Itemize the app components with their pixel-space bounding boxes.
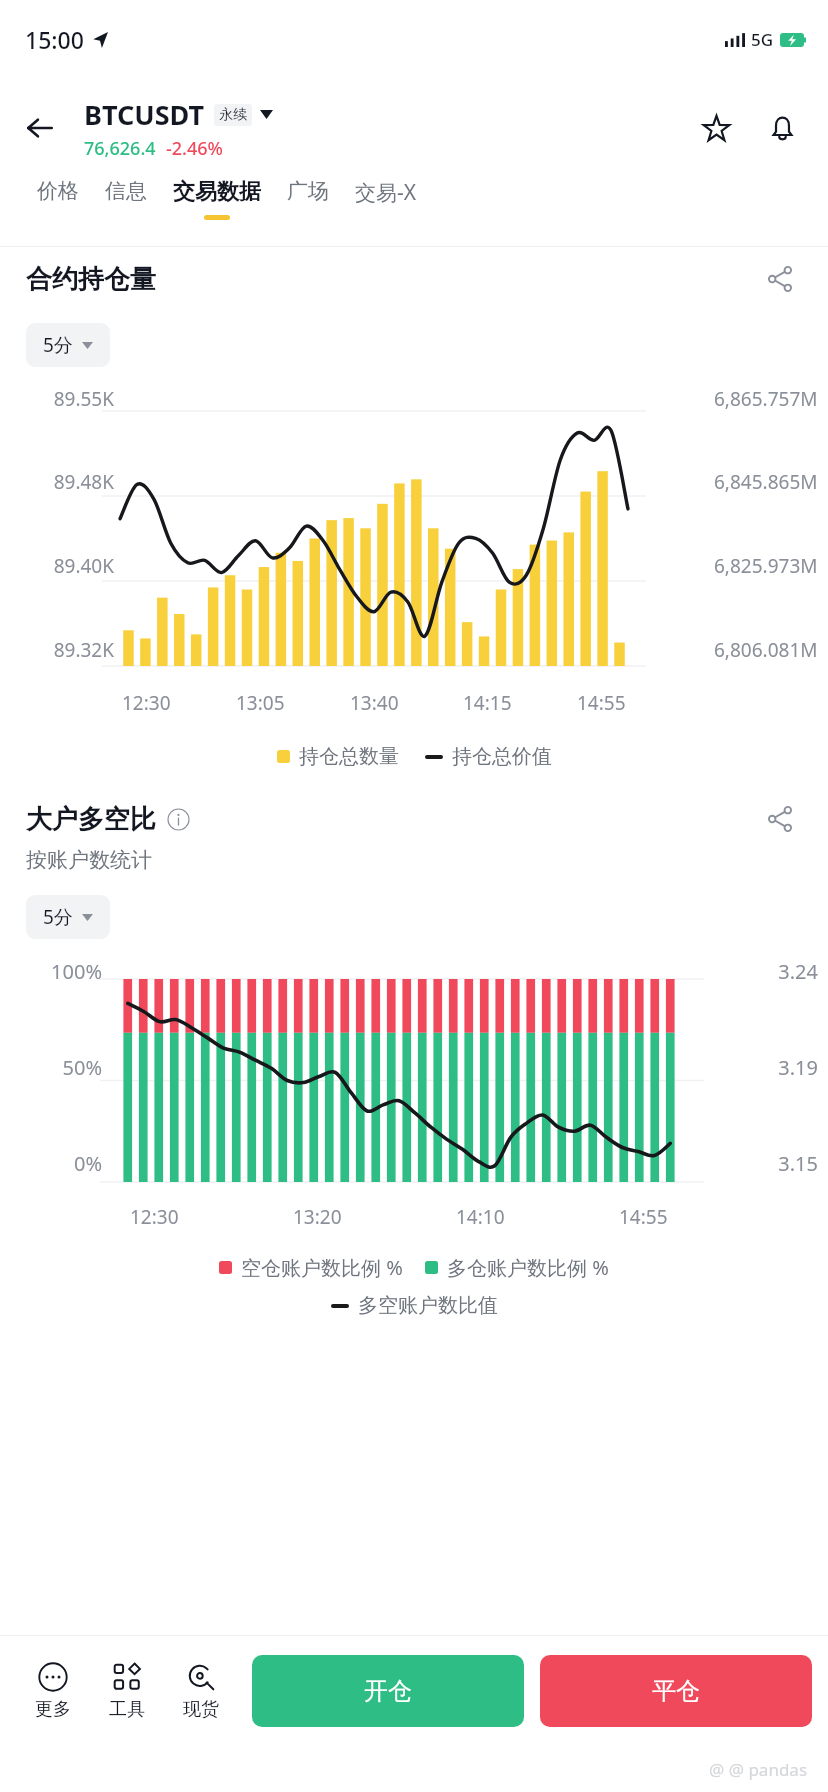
- staticText: 13:05: [236, 690, 285, 716]
- button[interactable]: 价格: [24, 178, 92, 213]
- button[interactable]: Info: [165, 806, 191, 832]
- button[interactable]: 交易数据: [160, 178, 274, 220]
- staticText: 6,806.081M: [714, 637, 818, 663]
- button[interactable]: 现货: [164, 1657, 238, 1725]
- staticText: 3.15: [732, 1150, 818, 1177]
- staticText: 大户多空比: [26, 803, 156, 836]
- button[interactable]: Notifications: [754, 100, 810, 156]
- staticText: 5分: [43, 332, 73, 358]
- staticText: 现货: [183, 1698, 219, 1721]
- staticText: 89.40K: [10, 553, 114, 579]
- staticText: 6,845.865M: [714, 469, 818, 495]
- staticText: 按账户数统计: [26, 847, 152, 873]
- staticText: 14:15: [463, 690, 512, 716]
- staticText: 信息: [105, 178, 147, 204]
- button[interactable]: 交易-X: [342, 178, 430, 216]
- staticText: 13:20: [293, 1204, 342, 1230]
- button[interactable]: Back: [12, 100, 68, 156]
- staticText: 6,865.757M: [714, 386, 818, 412]
- staticText: 平仓: [652, 1676, 700, 1706]
- staticText: 多空账户数比值: [358, 1293, 498, 1318]
- button[interactable]: Favorite: [688, 100, 744, 156]
- staticText: 更多: [35, 1698, 71, 1721]
- staticText: 广场: [287, 178, 329, 204]
- staticText: 合约持仓量: [26, 263, 156, 296]
- button[interactable]: 5分: [26, 895, 110, 939]
- staticText: 14:55: [577, 690, 626, 716]
- staticText: 工具: [109, 1698, 145, 1721]
- staticText: 持仓总价值: [452, 744, 552, 769]
- staticText: 5分: [43, 904, 73, 930]
- button[interactable]: 开仓: [252, 1655, 524, 1727]
- staticText: 6,825.973M: [714, 553, 818, 579]
- staticText: 13:40: [350, 690, 399, 716]
- staticText: BTCUSDT: [84, 96, 205, 133]
- staticText: 0%: [10, 1150, 102, 1177]
- staticText: 15:00: [25, 24, 84, 55]
- staticText: 14:10: [456, 1204, 505, 1230]
- staticText: 12:30: [122, 690, 171, 716]
- staticText: 空仓账户数比例 %: [241, 1254, 403, 1281]
- staticText: 89.55K: [10, 386, 114, 412]
- staticText: -2.46%: [166, 136, 223, 161]
- staticText: 开仓: [364, 1676, 412, 1706]
- staticText: 交易数据: [173, 178, 261, 206]
- button[interactable]: 工具: [90, 1657, 164, 1725]
- staticText: 89.32K: [10, 637, 114, 663]
- staticText: 持仓总数量: [299, 744, 399, 769]
- staticText: 价格: [37, 178, 79, 204]
- staticText: 100%: [10, 958, 102, 985]
- button[interactable]: Share: [758, 257, 802, 301]
- staticText: 3.24: [732, 958, 818, 985]
- staticText: 76,626.4: [84, 136, 156, 161]
- button[interactable]: 5分: [26, 323, 110, 367]
- staticText: 50%: [10, 1054, 102, 1081]
- staticText: 14:55: [619, 1204, 668, 1230]
- staticText: 3.19: [732, 1054, 818, 1081]
- button[interactable]: 信息: [92, 178, 160, 213]
- staticText: 12:30: [130, 1204, 179, 1230]
- button[interactable]: Share: [758, 797, 802, 841]
- staticText: @ @ pandas: [709, 1758, 808, 1781]
- staticText: 5G: [751, 28, 774, 51]
- button[interactable]: 广场: [274, 178, 342, 213]
- staticText: 多仓账户数比例 %: [447, 1254, 609, 1281]
- button[interactable]: 平仓: [540, 1655, 812, 1727]
- button[interactable]: 更多: [16, 1657, 90, 1725]
- staticText: 永续: [219, 106, 247, 124]
- staticText: 交易-X: [355, 178, 417, 207]
- staticText: 89.48K: [10, 469, 114, 495]
